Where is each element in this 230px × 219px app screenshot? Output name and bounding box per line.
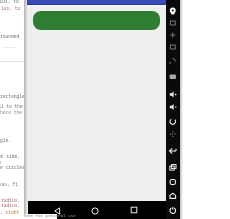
staticText: e circles [0, 164, 25, 170]
button[interactable] [88, 204, 102, 218]
staticText: ~~~~~~ [2, 45, 17, 50]
staticText: rectangle [0, 93, 25, 99]
staticText: gle. [0, 137, 12, 143]
staticText: al to the { [0, 103, 23, 115]
staticText: here the [0, 109, 23, 115]
button[interactable] [50, 204, 64, 218]
button[interactable] [33, 11, 160, 30]
staticText: , right [0, 209, 20, 215]
staticText: rounded [0, 33, 20, 39]
staticText: ht side, w [0, 153, 23, 165]
staticText: free for personal use [23, 213, 76, 219]
staticText: ius, to [1, 5, 21, 11]
button[interactable] [127, 203, 141, 217]
staticText: radius, [1, 197, 21, 203]
staticText: nvas, fi [0, 181, 19, 187]
staticText: adius, to [0, 0, 19, 4]
staticText: radius, [1, 202, 21, 208]
